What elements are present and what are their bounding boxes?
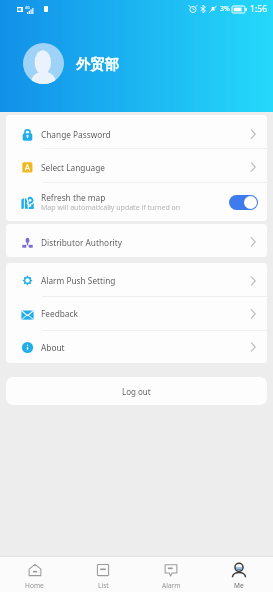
- staticText: Alarm: [162, 581, 181, 590]
- staticText: Me: [234, 581, 244, 590]
- button[interactable]: Alarm Push Setting: [6, 263, 267, 296]
- other: Alarm: [164, 563, 178, 577]
- button[interactable]: List: [69, 557, 137, 592]
- button[interactable]: Home: [0, 557, 69, 592]
- staticText: 3%: [220, 4, 230, 14]
- button[interactable]: Refresh the map: [6, 183, 267, 221]
- other: List: [96, 563, 110, 577]
- other: Me: [232, 563, 246, 577]
- button[interactable]: Alarm: [137, 557, 205, 592]
- other: Home: [28, 563, 42, 577]
- staticText: 4G: [25, 5, 30, 10]
- staticText: Feedback: [41, 308, 78, 319]
- button[interactable]: Me: [205, 557, 273, 592]
- button[interactable]: Log out: [6, 377, 267, 405]
- button[interactable]: Refresh the map toggle: [229, 195, 258, 210]
- button[interactable]: About: [6, 331, 267, 363]
- staticText: Select Language: [41, 162, 105, 173]
- staticText: About: [41, 342, 65, 353]
- staticText: Refresh the map: [41, 192, 106, 203]
- button[interactable]: Select Language: [6, 149, 267, 182]
- staticText: 外贸部: [76, 55, 119, 73]
- button[interactable]: Distributor Authority: [6, 224, 267, 257]
- staticText: 1:56: [250, 3, 268, 15]
- staticText: Change Password: [41, 129, 111, 140]
- staticText: List: [98, 581, 109, 590]
- staticText: Log out: [122, 386, 151, 397]
- staticText: Alarm Push Setting: [41, 275, 116, 286]
- staticText: Map will automatically update if turned …: [41, 203, 181, 213]
- button[interactable]: Feedback: [6, 297, 267, 330]
- staticText: Home: [25, 581, 44, 590]
- staticText: Distributor Authority: [41, 237, 122, 248]
- button[interactable]: Change Password: [6, 115, 267, 148]
